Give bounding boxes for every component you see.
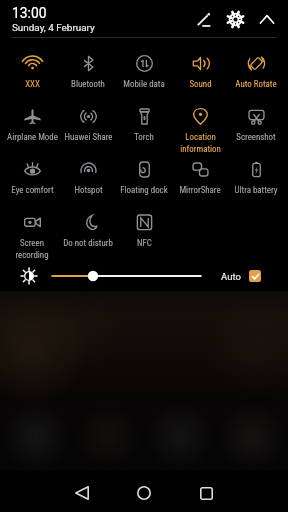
button[interactable]: MirrorShare bbox=[172, 152, 228, 195]
staticText: Eye comfort bbox=[11, 185, 54, 195]
button[interactable]: Mobile data bbox=[116, 46, 172, 89]
staticText: Hotspot bbox=[74, 185, 103, 195]
staticText: Floating dock bbox=[120, 185, 168, 195]
button[interactable]: Screen recording bbox=[4, 205, 60, 260]
button[interactable]: Brightness slider bbox=[51, 268, 202, 284]
button[interactable]: Auto bbox=[221, 270, 261, 282]
staticText: Do not disturb bbox=[63, 238, 113, 248]
button[interactable]: Torch bbox=[116, 99, 172, 142]
staticText: NFC bbox=[137, 238, 152, 248]
button[interactable]: Recents bbox=[185, 474, 227, 512]
staticText: Sound bbox=[189, 79, 212, 89]
button[interactable]: Hotspot bbox=[60, 152, 116, 195]
button[interactable]: NFC bbox=[116, 205, 172, 248]
staticText: Ultra battery bbox=[234, 185, 278, 195]
button[interactable]: Airplane Mode bbox=[4, 99, 60, 142]
staticText: Auto bbox=[221, 271, 241, 282]
button[interactable]: Edit bbox=[190, 6, 216, 32]
button[interactable]: Eye comfort bbox=[4, 152, 60, 195]
button[interactable]: Do not disturb bbox=[60, 205, 116, 248]
staticText: Screen recording bbox=[15, 238, 49, 260]
button[interactable]: Location information bbox=[172, 99, 228, 154]
staticText: Sunday, 4 February bbox=[12, 22, 95, 34]
button[interactable]: Brightness bbox=[21, 268, 37, 284]
staticText: MirrorShare bbox=[179, 185, 221, 195]
button[interactable]: Huawei Share bbox=[60, 99, 116, 142]
button[interactable]: Ultra battery bbox=[228, 152, 284, 195]
button[interactable]: Auto Rotate bbox=[228, 46, 284, 89]
staticText: 13:00 bbox=[12, 5, 47, 21]
staticText: Torch bbox=[134, 132, 154, 142]
button[interactable]: XXX bbox=[4, 46, 60, 89]
staticText: Auto Rotate bbox=[235, 79, 277, 89]
button[interactable]: Floating dock bbox=[116, 152, 172, 195]
staticText: Mobile data bbox=[123, 79, 165, 89]
button[interactable]: Bluetooth bbox=[60, 46, 116, 89]
staticText: Location information bbox=[180, 132, 221, 154]
staticText: Huawei Share bbox=[64, 132, 113, 142]
button[interactable]: Back bbox=[61, 474, 103, 512]
button[interactable]: Screenshot bbox=[228, 99, 284, 142]
button[interactable]: Collapse bbox=[254, 6, 280, 32]
staticText: Bluetooth bbox=[71, 79, 105, 89]
button[interactable]: Sound bbox=[172, 46, 228, 89]
staticText: XXX bbox=[25, 79, 40, 89]
button[interactable]: Settings bbox=[222, 6, 248, 32]
button[interactable]: Home bbox=[123, 474, 165, 512]
staticText: Screenshot bbox=[236, 132, 276, 142]
staticText: Airplane Mode bbox=[7, 132, 58, 142]
